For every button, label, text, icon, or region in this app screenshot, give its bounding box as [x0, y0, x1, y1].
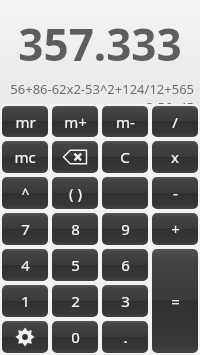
- staticText: 5: [71, 255, 80, 275]
- button[interactable]: 0: [52, 321, 98, 353]
- staticText: m+: [64, 112, 87, 132]
- button[interactable]: +: [152, 213, 198, 245]
- button[interactable]: m-: [102, 106, 148, 137]
- staticText: 9: [121, 219, 130, 239]
- staticText: =: [171, 291, 180, 311]
- button[interactable]: [102, 177, 148, 209]
- staticText: mr: [15, 112, 36, 132]
- staticText: 2: [71, 291, 80, 311]
- staticText: 6: [121, 255, 130, 275]
- button[interactable]: mr: [2, 106, 48, 137]
- button[interactable]: 8: [52, 213, 98, 245]
- button[interactable]: 9: [102, 213, 148, 245]
- staticText: x: [171, 147, 179, 167]
- button[interactable]: /: [152, 106, 198, 137]
- button[interactable]: Backspace: [52, 141, 98, 173]
- staticText: ^: [21, 184, 30, 203]
- staticText: /: [172, 112, 178, 132]
- staticText: .: [123, 327, 128, 347]
- staticText: mc: [14, 147, 36, 167]
- staticText: ( ): [69, 183, 82, 203]
- staticText: 0: [71, 327, 80, 347]
- button[interactable]: 1: [2, 285, 48, 317]
- button[interactable]: Settings: [2, 321, 48, 353]
- button[interactable]: 4: [2, 249, 48, 281]
- button[interactable]: =: [152, 249, 198, 353]
- staticText: -: [173, 183, 178, 203]
- button[interactable]: 7: [2, 213, 48, 245]
- button[interactable]: .: [102, 321, 148, 353]
- button[interactable]: x: [152, 141, 198, 173]
- button[interactable]: ^: [2, 177, 48, 209]
- button[interactable]: mc: [2, 141, 48, 173]
- button[interactable]: -: [152, 177, 198, 209]
- button[interactable]: 6: [102, 249, 148, 281]
- staticText: 8: [71, 219, 80, 239]
- staticText: 1: [21, 291, 30, 311]
- button[interactable]: 5: [52, 249, 98, 281]
- button[interactable]: 2: [52, 285, 98, 317]
- button[interactable]: m+: [52, 106, 98, 137]
- button[interactable]: 3: [102, 285, 148, 317]
- staticText: 7: [21, 219, 30, 239]
- staticText: m-: [116, 112, 135, 132]
- staticText: +: [171, 219, 180, 239]
- button[interactable]: ( ): [52, 177, 98, 209]
- button[interactable]: C: [102, 141, 148, 173]
- staticText: C: [120, 147, 130, 167]
- staticText: 3: [121, 291, 130, 311]
- staticText: 4: [21, 255, 30, 275]
- staticText: 357.33334: [6, 14, 194, 74]
- staticText: 56+86-62x2-53^2+124/12+5658-56x45: [6, 80, 194, 104]
